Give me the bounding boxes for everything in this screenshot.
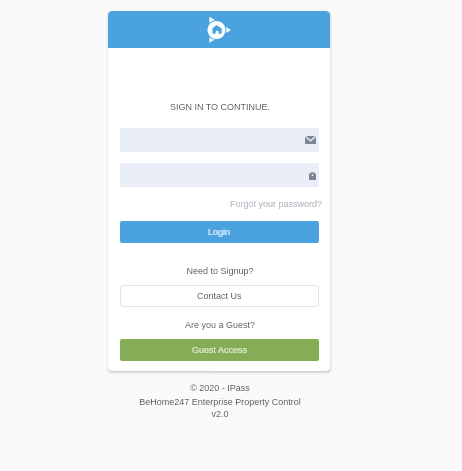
staticText: © 2020 - IPass bbox=[0, 383, 451, 393]
other: Email bbox=[305, 136, 316, 144]
staticText: Need to Signup? bbox=[109, 266, 330, 276]
button[interactable]: Contact Us bbox=[120, 285, 319, 307]
button[interactable]: Forgot your password? bbox=[108, 199, 322, 209]
staticText: Guest Access bbox=[192, 345, 248, 355]
staticText: Are you a Guest? bbox=[109, 320, 330, 330]
button[interactable]: Login bbox=[120, 221, 319, 243]
button[interactable]: Password bbox=[120, 163, 319, 187]
staticText: Login bbox=[208, 227, 231, 237]
staticText: SIGN IN TO CONTINUE. bbox=[109, 102, 330, 112]
other: Password bbox=[309, 171, 316, 180]
staticText: v2.0 bbox=[0, 409, 451, 419]
staticText: Contact Us bbox=[197, 291, 242, 301]
staticText: BeHome247 Enterprise Property Control bbox=[0, 397, 451, 407]
button[interactable]: Email bbox=[120, 128, 319, 152]
other: BeHome247 logo bbox=[108, 11, 330, 48]
button[interactable]: Guest Access bbox=[120, 339, 319, 361]
